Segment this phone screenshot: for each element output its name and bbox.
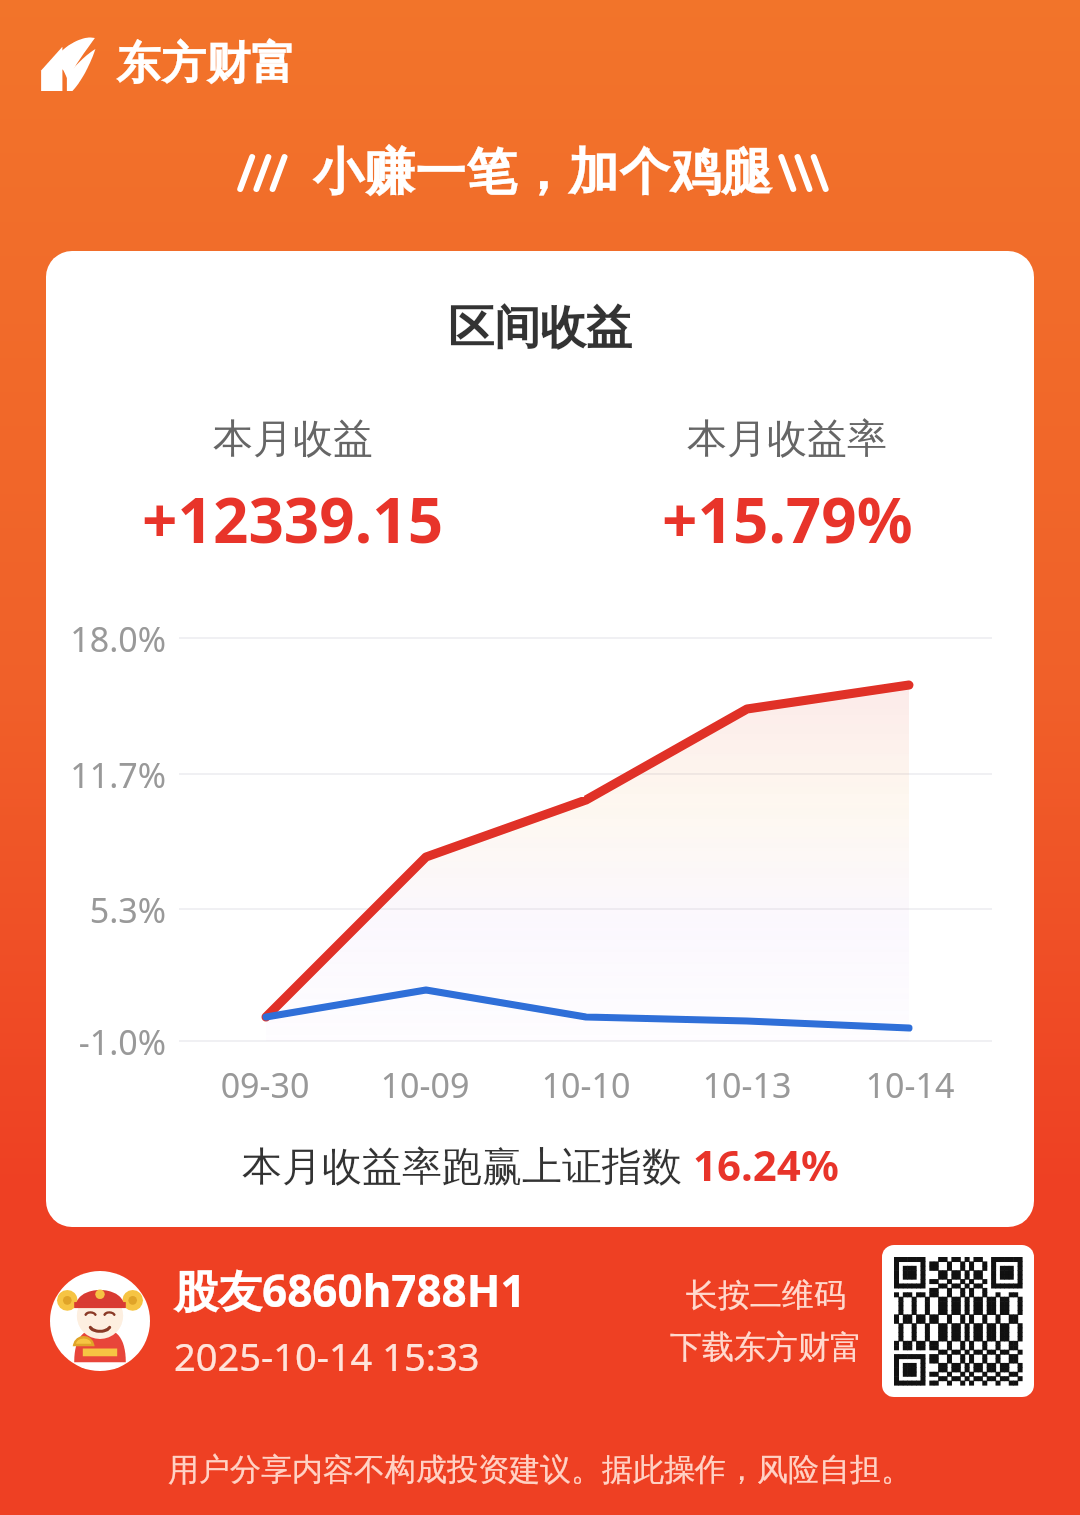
staticText: 股友6860h788H1 — [174, 1260, 526, 1320]
staticText: 5.3% — [60, 887, 166, 933]
staticText: 下载东方财富 — [670, 1327, 862, 1367]
staticText: -1.0% — [60, 1019, 166, 1065]
button[interactable]: QR code to download app — [882, 1245, 1034, 1397]
staticText: 区间收益 — [46, 299, 1034, 357]
staticText: 2025-10-14 15:33 — [174, 1330, 480, 1382]
staticText: 11.7% — [60, 752, 166, 798]
staticText: +15.79% — [662, 477, 913, 561]
button[interactable]: User avatar — [50, 1271, 150, 1371]
staticText: 东方财富 — [116, 36, 296, 91]
staticText: 10-10 — [516, 1062, 656, 1108]
staticText: 10-14 — [840, 1062, 980, 1108]
staticText: 18.0% — [60, 616, 166, 662]
staticText: 小赚一笔，加个鸡腿 — [313, 141, 772, 204]
staticText: 本月收益率跑赢上证指数 — [242, 1137, 693, 1192]
staticText: 长按二维码 — [686, 1275, 846, 1315]
button[interactable]: 区间收益 — [46, 251, 1034, 1227]
staticText: +12339.15 — [142, 477, 444, 561]
staticText: 10-09 — [355, 1062, 495, 1108]
button[interactable]: 本月收益 — [46, 413, 540, 561]
staticText: 用户分享内容不构成投资建议。据此操作，风险自担。 — [0, 1450, 1080, 1489]
button[interactable]: 本月收益率 — [540, 413, 1034, 561]
staticText: 本月收益率 — [687, 413, 887, 463]
staticText: 09-30 — [195, 1062, 335, 1108]
button[interactable]: 东方财富 — [40, 36, 296, 91]
staticText: 10-13 — [677, 1062, 817, 1108]
staticText: 16.24% — [693, 1136, 839, 1193]
staticText: 本月收益 — [213, 413, 373, 463]
